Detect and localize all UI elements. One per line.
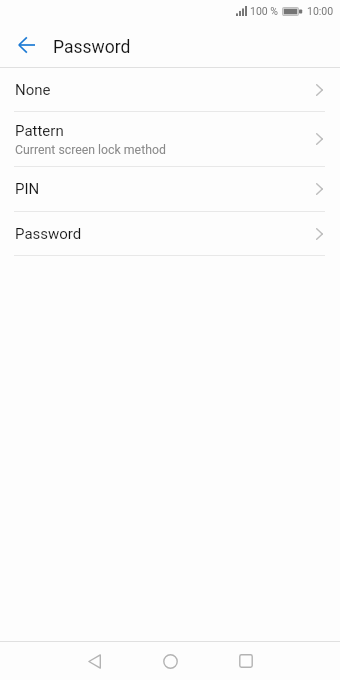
button[interactable]: Back <box>56 642 132 680</box>
staticText: Password <box>15 225 82 243</box>
button[interactable]: None <box>0 68 340 112</box>
staticText: PIN <box>15 180 40 198</box>
button[interactable]: Pattern <box>0 112 340 167</box>
button[interactable]: PIN <box>0 167 340 212</box>
button[interactable]: Recent apps <box>208 642 284 680</box>
button[interactable]: Back <box>0 22 45 67</box>
staticText: Password <box>53 37 131 58</box>
button[interactable]: Password <box>0 212 340 256</box>
button[interactable]: Home <box>132 642 208 680</box>
staticText: 10:00 <box>307 5 334 17</box>
staticText: Pattern <box>15 122 64 140</box>
staticText: None <box>15 81 51 99</box>
staticText: Current screen lock method <box>15 143 166 157</box>
staticText: 100 % <box>250 5 278 17</box>
